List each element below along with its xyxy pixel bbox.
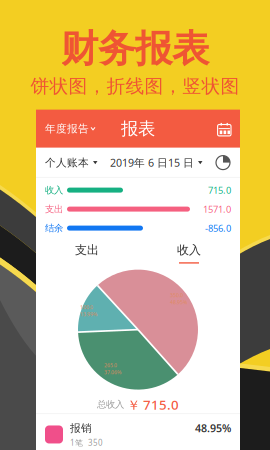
staticText: 报销: [70, 422, 92, 435]
staticText: 48.95%: [170, 299, 187, 306]
staticText: 48.95%: [195, 421, 231, 435]
staticText: 收入: [177, 242, 201, 257]
button[interactable]: 支出: [36, 238, 138, 264]
button[interactable]: Calendar: [218, 110, 240, 148]
staticText: 支出: [75, 242, 99, 257]
button[interactable]: Chart type: [215, 148, 240, 178]
staticText: 350.0: [170, 292, 183, 299]
staticText: 财务报表: [61, 26, 209, 72]
staticText: 1笔: [70, 437, 83, 448]
staticText: 265.0: [104, 362, 117, 369]
button[interactable]: 个人账本: [36, 148, 97, 178]
staticText: 年度报告: [45, 122, 89, 135]
staticText: 37.06%: [104, 369, 121, 376]
staticText: 13.99%: [80, 311, 97, 318]
staticText: 2019年 6 日15 日: [110, 155, 194, 170]
staticText: 100.0: [80, 304, 93, 311]
staticText: -856.0: [205, 222, 231, 234]
button[interactable]: 年度报告: [36, 110, 95, 148]
staticText: 报表: [121, 118, 155, 139]
staticText: 350: [88, 437, 103, 448]
staticText: 支出: [45, 203, 63, 215]
button[interactable]: 2019年 6 日15 日: [110, 148, 202, 178]
staticText: 结余: [45, 222, 63, 234]
staticText: 饼状图，折线图，竖状图: [30, 75, 239, 98]
button[interactable]: 收入: [138, 238, 240, 264]
staticText: 1571.0: [203, 203, 231, 215]
staticText: 收入: [45, 184, 63, 196]
staticText: 总收入: [97, 399, 124, 410]
button[interactable]: 报销: [36, 413, 240, 450]
staticText: ￥ 715.0: [127, 396, 179, 413]
staticText: 715.0: [208, 184, 231, 196]
staticText: 个人账本: [45, 156, 89, 169]
